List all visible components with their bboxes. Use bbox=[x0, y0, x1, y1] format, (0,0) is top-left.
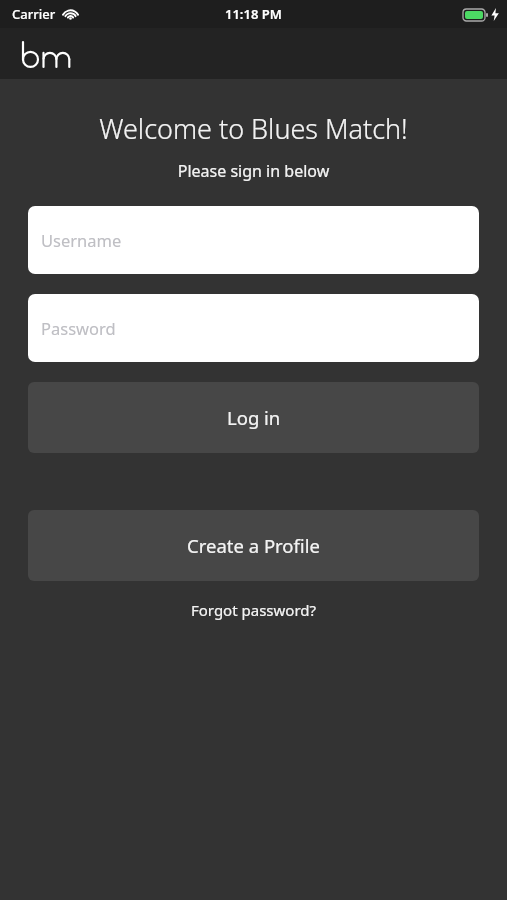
button[interactable]: Create a Profile bbox=[28, 510, 479, 581]
button[interactable]: Username bbox=[28, 206, 479, 274]
button[interactable]: Log in bbox=[28, 382, 479, 453]
button[interactable]: Forgot password? bbox=[0, 600, 507, 620]
staticText: Username bbox=[41, 229, 122, 251]
staticText: Log in bbox=[227, 405, 281, 430]
button[interactable]: Password bbox=[28, 294, 479, 362]
staticText: 11:18 PM bbox=[225, 5, 282, 23]
staticText: Forgot password? bbox=[0, 600, 507, 620]
staticText: Welcome to Blues Match! bbox=[0, 110, 507, 147]
staticText: Password bbox=[41, 317, 116, 339]
staticText: Create a Profile bbox=[187, 533, 320, 558]
staticText: Please sign in below bbox=[0, 160, 507, 182]
button[interactable]: Blues Match home bbox=[20, 39, 68, 69]
staticText: Carrier bbox=[12, 5, 56, 23]
